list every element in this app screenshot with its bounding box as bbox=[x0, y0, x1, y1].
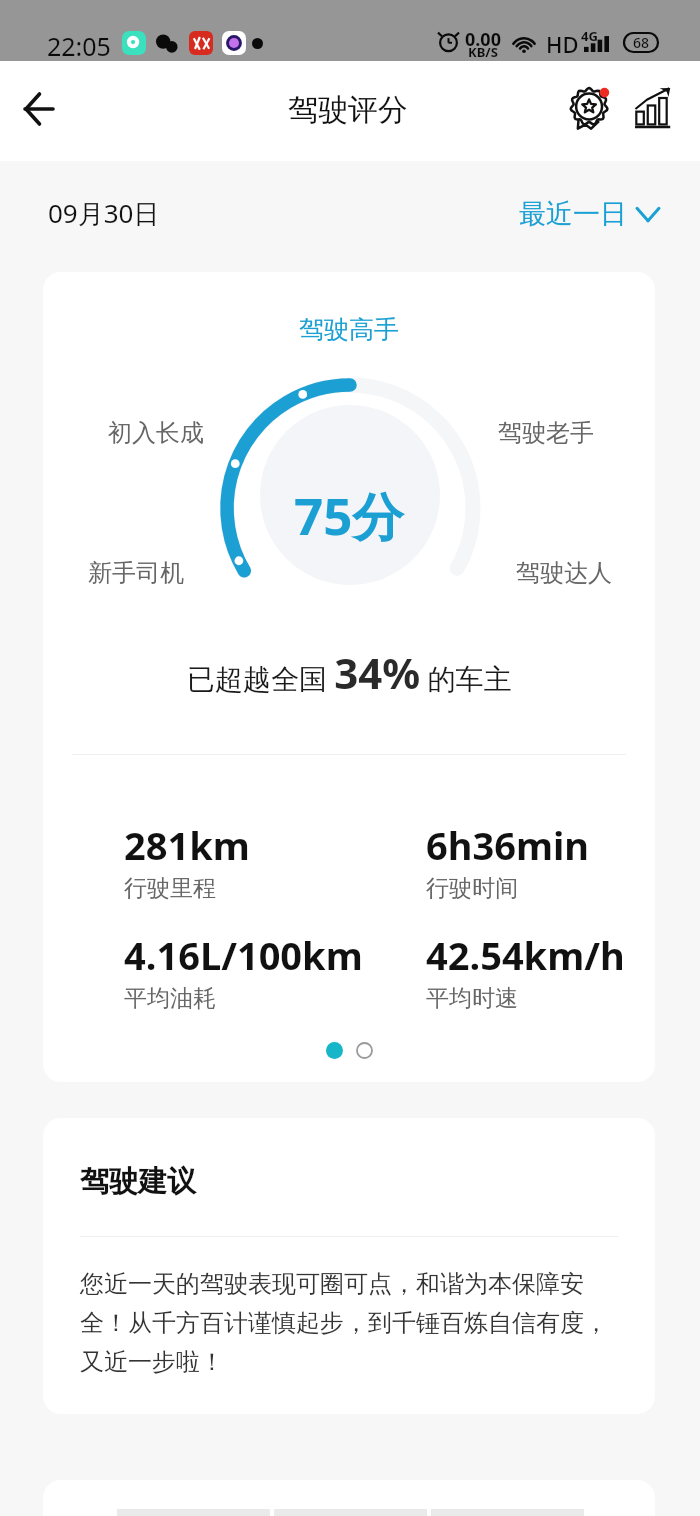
staticText: 行驶时间 bbox=[426, 874, 518, 903]
staticText: 4G bbox=[581, 27, 598, 45]
button[interactable]: Achievements bbox=[567, 83, 615, 131]
staticText: 09月30日 bbox=[48, 195, 160, 231]
staticText: KB/S bbox=[468, 43, 498, 61]
staticText: 6h36min bbox=[426, 819, 590, 871]
staticText: 驾驶评分 bbox=[288, 91, 408, 129]
staticText: 新手司机 bbox=[88, 558, 184, 588]
staticText: 平均时速 bbox=[426, 984, 518, 1013]
staticText: HD bbox=[546, 29, 579, 59]
staticText: 22:05 bbox=[47, 29, 111, 63]
button[interactable]: 最近一日 bbox=[519, 197, 659, 231]
staticText: 初入长成 bbox=[108, 418, 204, 448]
staticText: 0.00 bbox=[465, 27, 501, 52]
staticText: 4.16L/100km bbox=[124, 929, 363, 981]
button[interactable]: Back bbox=[13, 83, 65, 135]
staticText: 驾驶建议 bbox=[80, 1163, 196, 1200]
staticText: 驾驶老手 bbox=[498, 418, 594, 448]
staticText: 您近一天的驾驶表现可圈可点，和谐为本保障安 全！从千方百计谨慎起步，到千锤百炼自… bbox=[80, 1269, 640, 1378]
staticText: 最近一日 bbox=[519, 197, 627, 231]
staticText: 行驶里程 bbox=[124, 874, 216, 903]
staticText: 68 bbox=[633, 33, 650, 52]
button[interactable]: Statistics bbox=[635, 87, 679, 131]
staticText: 281km bbox=[124, 819, 250, 871]
staticText: 驾驶达人 bbox=[516, 558, 612, 588]
staticText: 平均油耗 bbox=[124, 984, 216, 1013]
staticText: 已超越全国 34% 的车主 bbox=[187, 644, 512, 701]
staticText: 42.54km/h bbox=[426, 929, 625, 981]
staticText: 75分 bbox=[294, 480, 404, 550]
staticText: 驾驶高手 bbox=[299, 314, 399, 345]
